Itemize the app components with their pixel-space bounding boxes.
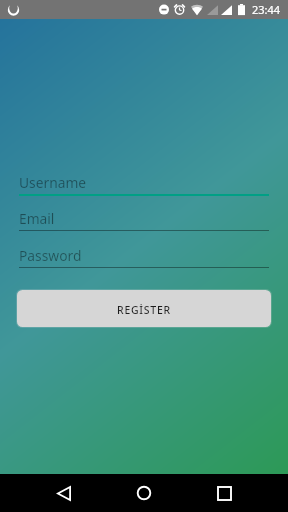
staticText: Email [19, 209, 55, 228]
staticText: Username [19, 173, 87, 192]
staticText: 23:44 [252, 2, 281, 17]
button[interactable]: Back [40, 474, 88, 512]
button[interactable]: REGİSTER [17, 290, 271, 327]
button[interactable]: Recents [200, 474, 248, 512]
staticText: Password [19, 246, 82, 265]
button[interactable]: Home [120, 474, 168, 512]
staticText: REGİSTER [117, 303, 171, 317]
